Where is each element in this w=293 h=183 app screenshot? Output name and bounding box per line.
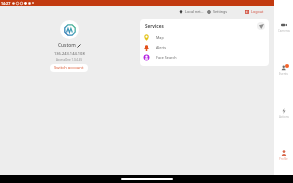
staticText: AccessOne 1.0.4.45 — [56, 58, 83, 62]
staticText: Cameras — [278, 29, 290, 33]
staticText: Logout — [251, 9, 264, 14]
staticText: 136.243.144.108 — [54, 51, 85, 56]
button[interactable]: Face Search — [140, 52, 269, 62]
button[interactable]: Cameras — [274, 21, 293, 34]
button[interactable]: Edit services — [257, 22, 265, 30]
staticText: 14:27 — [1, 1, 11, 6]
button[interactable]: Local net... — [178, 7, 205, 16]
button[interactable]: Alerts — [140, 42, 269, 52]
staticText: Local net... — [185, 9, 204, 14]
staticText: Services — [145, 23, 164, 29]
staticText: Switch account — [54, 65, 84, 71]
button[interactable]: Map — [140, 32, 269, 42]
staticText: Map — [156, 35, 164, 40]
staticText: Profile — [279, 157, 288, 161]
button[interactable]: Settings — [206, 7, 229, 16]
button[interactable]: Profile — [274, 149, 293, 162]
staticText: Events — [279, 72, 288, 76]
button[interactable]: Events — [274, 64, 293, 77]
staticText: Custom — [58, 42, 76, 49]
staticText: Alerts — [156, 45, 167, 50]
staticText: Actions — [279, 115, 289, 119]
button[interactable]: Logout — [244, 7, 265, 16]
button[interactable]: Switch account — [50, 64, 88, 72]
staticText: Settings — [213, 9, 228, 14]
button[interactable]: Actions — [274, 107, 293, 120]
staticText: Face Search — [156, 55, 177, 60]
